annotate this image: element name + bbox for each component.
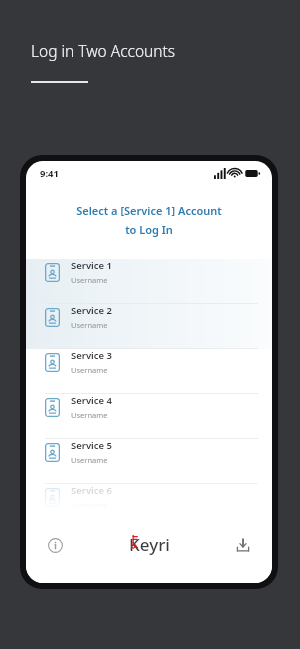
staticText: Keyri <box>129 533 170 556</box>
staticText: Service 3 <box>71 349 113 362</box>
staticText: Service 2 <box>71 304 113 317</box>
button[interactable]: Service 6 <box>26 484 272 512</box>
staticText: Service 5 <box>71 439 113 452</box>
staticText: Select a [Service 1] Account to Log In <box>44 203 254 237</box>
staticText: Username <box>71 410 108 420</box>
button[interactable]: Service 3 <box>26 349 272 394</box>
staticText: 9:41 <box>40 167 59 180</box>
staticText: Service 4 <box>71 394 113 407</box>
staticText: Log in Two Accounts <box>31 40 176 61</box>
button[interactable]: Service 1 <box>26 259 272 304</box>
staticText: Service 1 <box>71 259 113 272</box>
staticText: Username <box>71 320 108 330</box>
button[interactable]: Service 4 <box>26 394 272 439</box>
staticText: Username <box>71 365 108 375</box>
button[interactable]: Download <box>232 534 254 556</box>
staticText: Username <box>71 455 108 465</box>
button[interactable]: Service 5 <box>26 439 272 484</box>
staticText: Username <box>71 275 108 285</box>
button[interactable]: Information <box>44 534 66 556</box>
button[interactable]: Service 2 <box>26 304 272 349</box>
staticText: Service 6 <box>71 484 113 497</box>
button[interactable]: Keyri <box>129 533 170 556</box>
